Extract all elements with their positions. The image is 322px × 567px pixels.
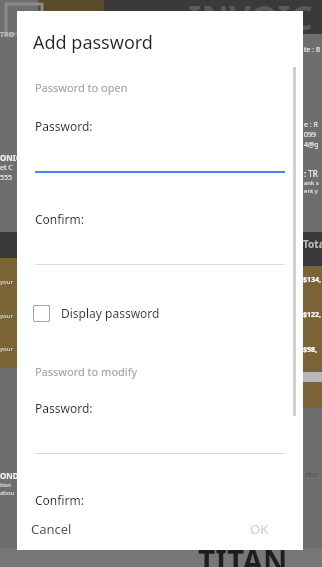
staticText: your [0, 345, 13, 353]
button[interactable]: OK [242, 508, 277, 550]
staticText: Add password [33, 30, 153, 55]
staticText: ent y [304, 187, 318, 195]
staticText: TITAN [198, 540, 288, 567]
staticText: $122, [303, 310, 322, 320]
staticText: te : 8 [304, 45, 320, 55]
staticText: OND [0, 470, 19, 481]
staticText: OK [250, 520, 269, 538]
staticText: $98, [303, 345, 318, 355]
staticText: $134, [303, 275, 322, 285]
staticText: e : R [304, 120, 318, 130]
staticText: Cancel [31, 520, 72, 538]
staticText: ONIC [0, 152, 22, 163]
staticText: Password: [35, 118, 93, 134]
staticText: Password to modify [35, 364, 138, 379]
button[interactable]: Cancel [23, 508, 80, 550]
staticText: TRO [0, 30, 15, 40]
staticText: Tota [303, 237, 322, 251]
staticText: Confirm: [35, 211, 84, 227]
staticText: 555 [0, 173, 13, 183]
staticText: tion [0, 481, 12, 489]
button[interactable]: Display password [33, 298, 213, 328]
staticText: your [0, 312, 13, 320]
button[interactable] [35, 400, 285, 454]
staticText: your [0, 278, 13, 286]
staticText: 4@g [304, 140, 319, 150]
staticText: Display password [61, 305, 160, 321]
staticText: atur [305, 470, 319, 480]
staticText: INVOIC [188, 0, 313, 40]
staticText: abou [0, 489, 15, 497]
button[interactable] [35, 211, 285, 265]
staticText: et C [0, 163, 13, 173]
staticText: Confirm: [35, 492, 84, 508]
button[interactable] [35, 118, 285, 173]
staticText: Password: [35, 400, 93, 416]
staticText: 099 [304, 130, 317, 140]
staticText: ank s [304, 179, 319, 187]
staticText: : TR [304, 168, 318, 179]
staticText: Password to open [35, 80, 128, 95]
